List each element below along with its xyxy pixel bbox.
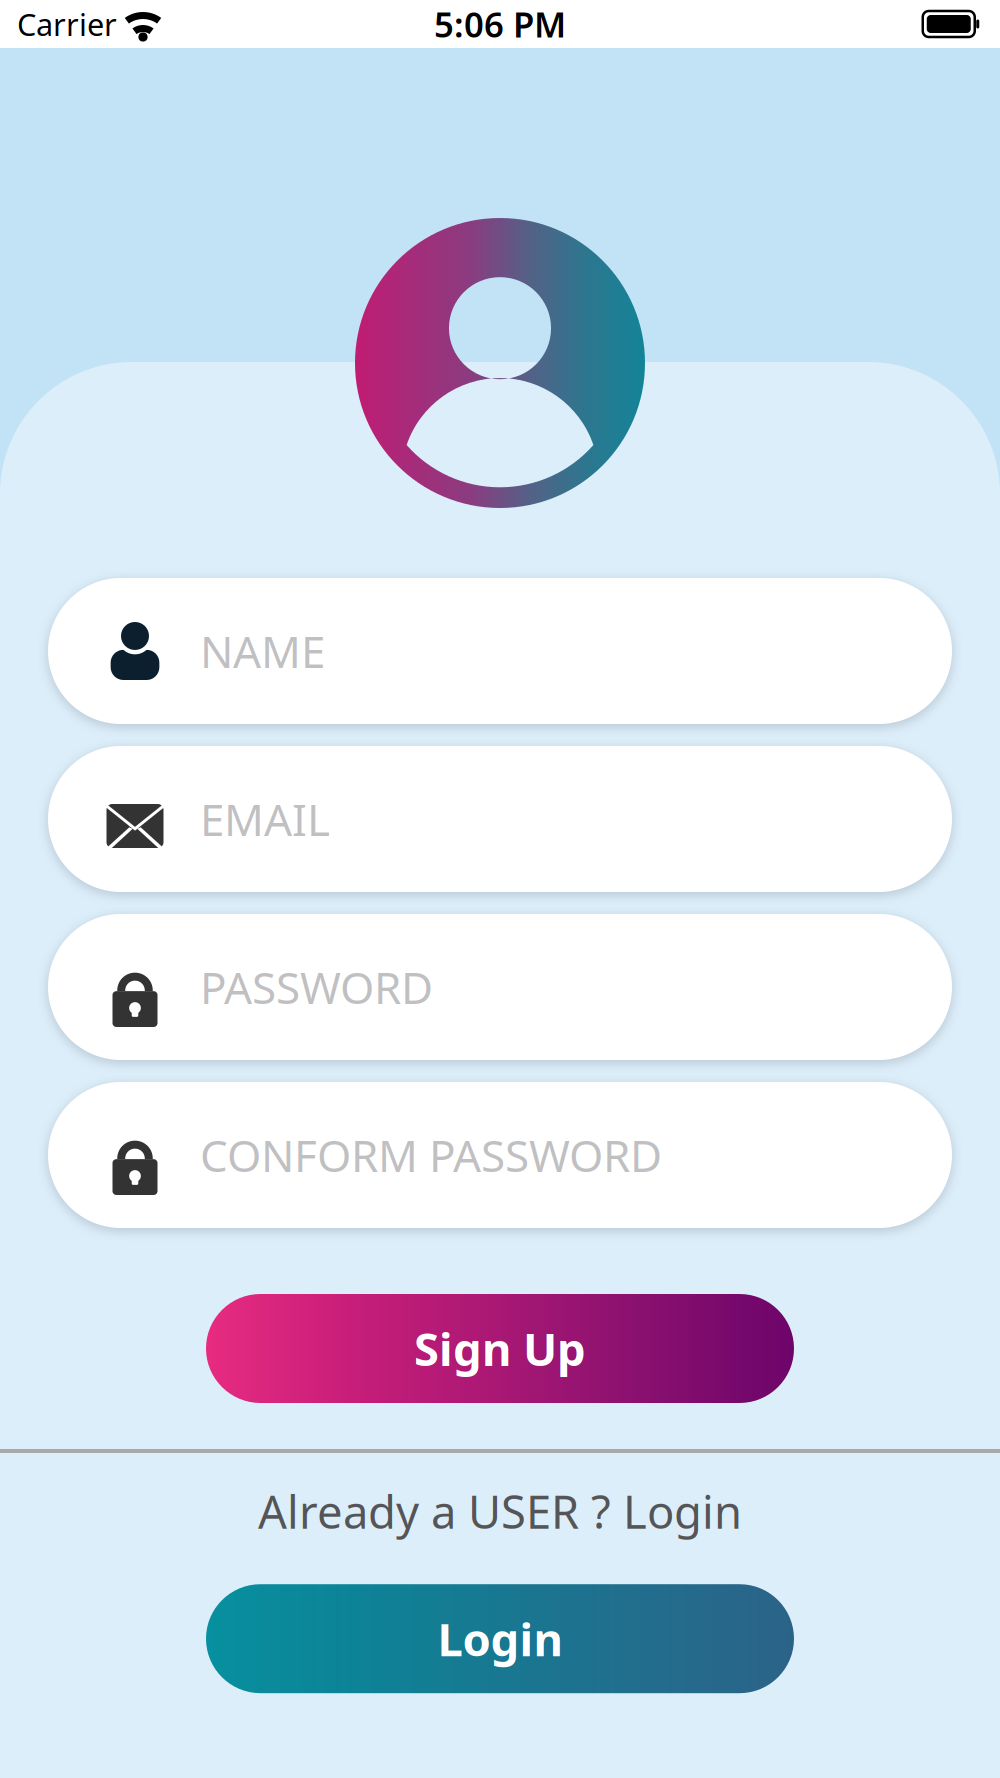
button[interactable]: EMAIL [48,746,952,892]
button[interactable]: NAME [48,578,952,724]
staticText: Sign Up [414,1318,586,1379]
button[interactable]: PASSWORD [48,914,952,1060]
staticText: Carrier [17,4,117,44]
button[interactable]: CONFORM PASSWORD [48,1082,952,1228]
staticText: Already a USER ? Login [258,1481,742,1541]
staticText: PASSWORD [200,958,433,1016]
staticText: NAME [200,622,325,680]
button[interactable]: Sign Up [206,1294,794,1403]
staticText: Login [437,1609,562,1669]
button[interactable]: Login [206,1584,794,1693]
staticText: 5:06 PM [434,1,566,47]
staticText: CONFORM PASSWORD [200,1126,662,1184]
staticText: EMAIL [200,790,330,848]
